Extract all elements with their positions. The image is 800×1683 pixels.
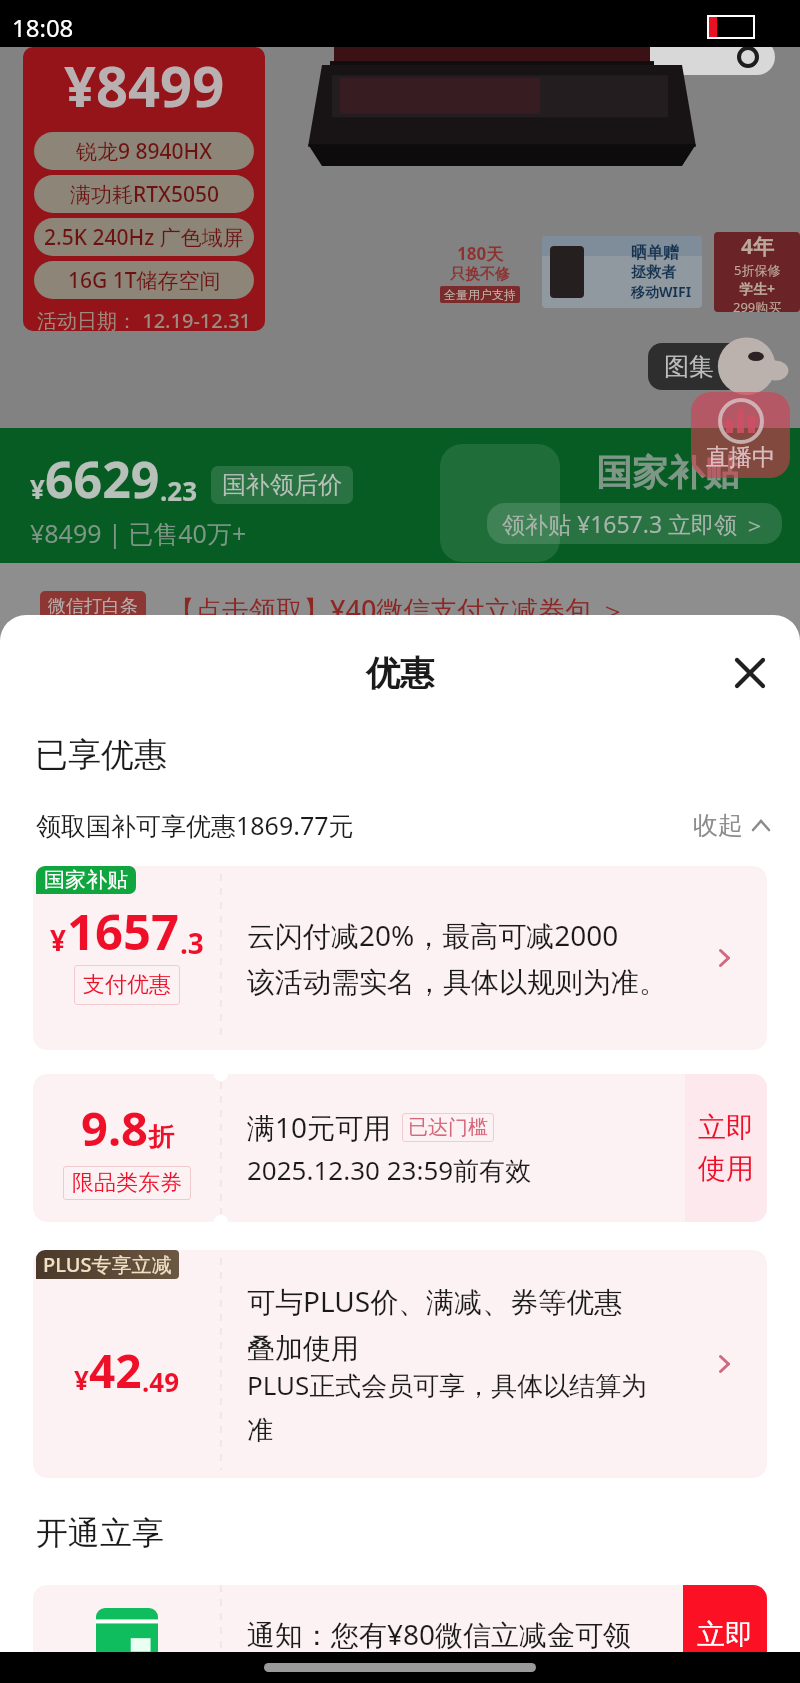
staticText: 立即	[697, 1617, 753, 1652]
staticText: 18:08	[12, 11, 74, 44]
staticText: .49	[142, 1364, 180, 1399]
staticText: 支付优惠	[83, 971, 171, 999]
staticText: 9.8	[81, 1096, 148, 1160]
staticText: 4年	[741, 232, 775, 261]
staticText: 锐龙9 8940HX	[76, 137, 213, 166]
staticText: 开通立享	[36, 1513, 164, 1553]
staticText: 使用	[698, 1151, 754, 1186]
staticText: ¥8499	[64, 47, 225, 123]
staticText: ¥	[30, 471, 45, 506]
staticText: 【点击领取】¥40微信支付立减券包 ＞	[168, 591, 627, 621]
staticText: 国家补贴	[44, 867, 128, 893]
staticText: 已达门槛	[408, 1115, 488, 1140]
staticText: ¥	[50, 921, 67, 959]
button[interactable]: 图集	[648, 343, 765, 390]
button[interactable]: 9.8	[33, 1074, 767, 1222]
staticText: .23	[160, 473, 198, 508]
button[interactable]: ¥	[33, 1250, 767, 1478]
staticText: PLUS正式会员可享，具体以结算为 准	[247, 1367, 648, 1447]
staticText: 优惠	[366, 652, 434, 695]
staticText: 299购买	[733, 298, 782, 312]
staticText: 180天	[457, 242, 504, 265]
staticText: 领取国补可享优惠1869.77元	[36, 808, 354, 842]
staticText: 满功耗RTX5050	[70, 180, 219, 209]
button[interactable]: 领补贴 ¥1657.3 立即领 ＞	[502, 508, 767, 539]
staticText: 通知：您有¥80微信立减金可领	[247, 1615, 632, 1653]
button[interactable]: 立即	[683, 1585, 767, 1683]
staticText: 5折保修	[734, 261, 781, 279]
button[interactable]: 关闭	[722, 651, 778, 695]
staticText: 国补领后价	[222, 470, 342, 500]
button[interactable]: 立即	[685, 1074, 767, 1222]
staticText: 2.5K 240Hz 广色域屏	[44, 223, 244, 252]
staticText: PLUS专享立减	[43, 1251, 172, 1278]
button[interactable]: ¥	[33, 866, 767, 1050]
staticText: 立即	[698, 1110, 754, 1145]
staticText: 只换不修	[450, 265, 510, 284]
staticText: 6629	[45, 445, 160, 513]
staticText: 拯救者	[631, 263, 676, 282]
button[interactable]: 通知：您有¥80微信立减金可领	[33, 1585, 767, 1683]
staticText: 国家补贴	[596, 450, 740, 495]
staticText: 已享优惠	[35, 734, 167, 776]
staticText: 晒单赠	[631, 243, 679, 263]
button[interactable]: 更多	[603, 39, 775, 75]
staticText: 收起	[693, 810, 743, 841]
staticText: 图集	[664, 351, 714, 382]
staticText: 全量用户支持	[444, 287, 516, 302]
staticText: 活动日期： 12.19-12.31	[37, 307, 252, 331]
staticText: ¥8499 | 已售40万+	[30, 516, 247, 550]
staticText: 16G 1T储存空间	[68, 266, 221, 295]
staticText: 领补贴 ¥1657.3 立即领 ＞	[502, 508, 767, 539]
staticText: 限品类东券	[72, 1169, 182, 1197]
staticText: ¥	[74, 1362, 89, 1397]
staticText: 满10元可用	[247, 1108, 392, 1146]
staticText: 学生+	[739, 279, 776, 298]
staticText: 云闪付减20%，最高可减2000 该活动需实名，具体以规则为准。	[247, 916, 667, 1001]
staticText: 移动WIFI	[631, 282, 692, 301]
staticText: 折	[148, 1121, 174, 1154]
staticText: .3	[180, 924, 204, 962]
staticText: 2025.12.30 23:59前有效	[247, 1152, 532, 1188]
staticText: 直播中	[706, 443, 775, 472]
staticText: 1657	[67, 898, 180, 965]
staticText: 微信打白条	[48, 595, 138, 617]
button[interactable]: 收起	[693, 810, 770, 841]
staticText: 可与PLUS价、满减、券等优惠 叠加使用	[247, 1282, 623, 1367]
button[interactable]: 直播中	[691, 392, 790, 478]
staticText: 42	[89, 1339, 142, 1402]
